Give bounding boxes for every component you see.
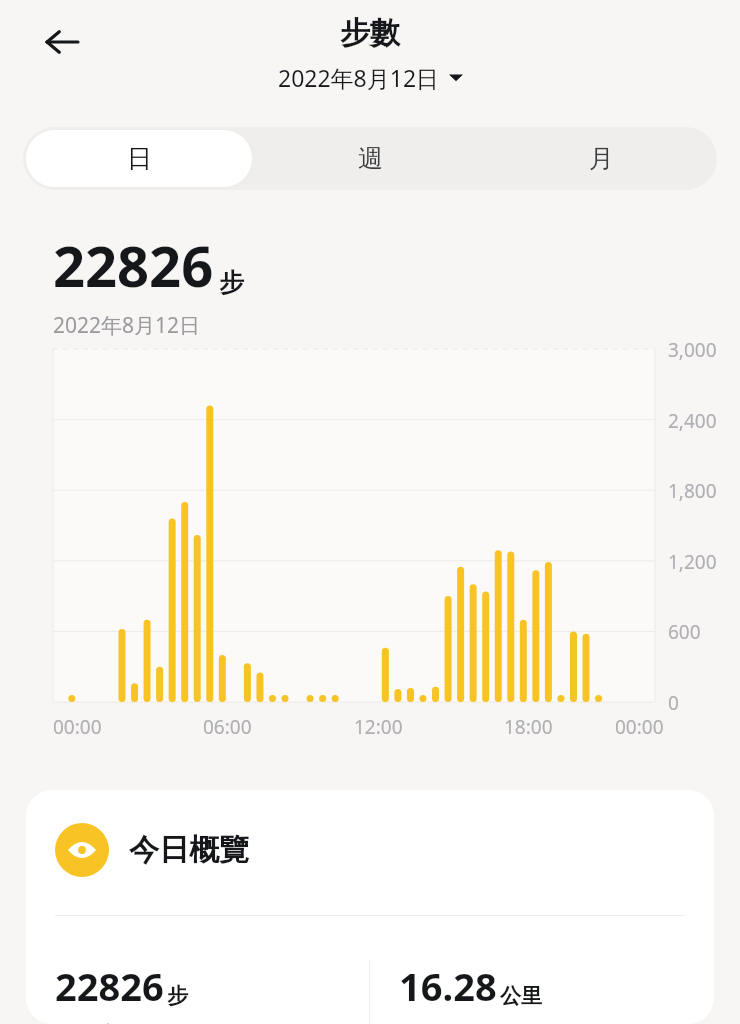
staticText: 週 [358, 143, 383, 174]
staticText: 16.28 [399, 960, 497, 1012]
staticText: 12:00 [354, 714, 403, 740]
staticText: 22826 [53, 227, 214, 303]
button[interactable]: 月 [489, 130, 714, 187]
staticText: 3,000 [668, 337, 717, 363]
staticText: 今日步數 [55, 1021, 139, 1024]
button[interactable]: 2022年8月12日 [272, 60, 469, 95]
staticText: 步 [219, 267, 244, 298]
staticText: 月 [589, 143, 614, 174]
staticText: 06:00 [203, 714, 252, 740]
staticText: 00:00 [615, 714, 664, 740]
staticText: 日 [127, 143, 152, 174]
staticText: 公里 [500, 983, 542, 1009]
staticText: 2022年8月12日 [278, 62, 440, 93]
staticText: 今日概覽 [129, 831, 249, 869]
staticText: 1,800 [668, 478, 717, 504]
staticText: 00:00 [53, 714, 102, 740]
staticText: 600 [668, 619, 701, 645]
staticText: 2,400 [668, 408, 717, 434]
staticText: 2022年8月12日 [53, 311, 201, 340]
staticText: 22826 [55, 960, 164, 1012]
staticText: 1,200 [668, 549, 717, 575]
button[interactable]: Back [36, 16, 88, 68]
button[interactable]: 今日概覽 [26, 790, 714, 1024]
button[interactable]: 日 [26, 130, 252, 187]
staticText: 步數 [340, 14, 400, 52]
button[interactable]: 週 [258, 130, 483, 187]
staticText: 0 [668, 690, 679, 716]
staticText: 步 [167, 983, 188, 1009]
staticText: 18:00 [504, 714, 553, 740]
